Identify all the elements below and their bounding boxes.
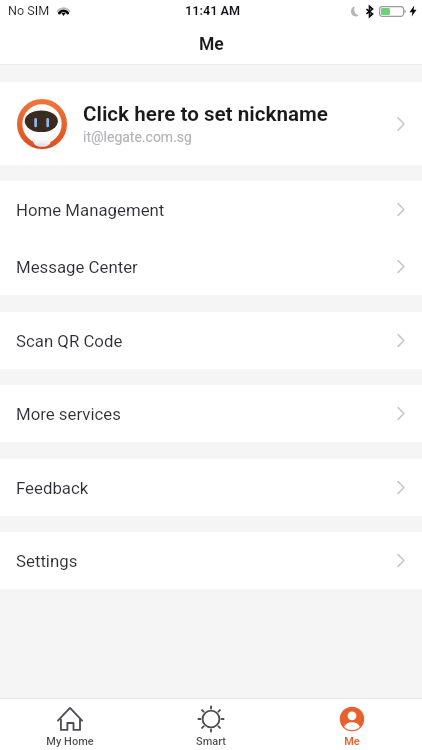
button[interactable]: Me	[281, 699, 422, 748]
button[interactable]: Settings	[0, 532, 422, 589]
staticText: Click here to set nickname	[83, 102, 328, 126]
button[interactable]: Smart	[140, 699, 281, 748]
staticText: My Home	[46, 735, 94, 748]
staticText: Message Center	[16, 257, 397, 277]
staticText: Scan QR Code	[16, 331, 397, 351]
button[interactable]: Message Center	[0, 238, 422, 295]
staticText: Home Management	[16, 200, 397, 220]
staticText: Me	[344, 735, 360, 748]
button[interactable]: Click here to set nickname	[0, 82, 422, 165]
staticText: Feedback	[16, 478, 397, 498]
staticText: More services	[16, 404, 397, 424]
staticText: it@legate.com.sg	[83, 129, 192, 145]
staticText: Settings	[16, 551, 397, 571]
button[interactable]: My Home	[0, 699, 140, 748]
staticText: Me	[199, 34, 224, 55]
button[interactable]: Feedback	[0, 459, 422, 516]
button[interactable]: Home Management	[0, 181, 422, 238]
button[interactable]: Scan QR Code	[0, 312, 422, 369]
staticText: Smart	[196, 735, 226, 748]
staticText: 11:41 AM	[185, 3, 241, 18]
button[interactable]: More services	[0, 385, 422, 442]
staticText: No SIM	[8, 3, 50, 18]
